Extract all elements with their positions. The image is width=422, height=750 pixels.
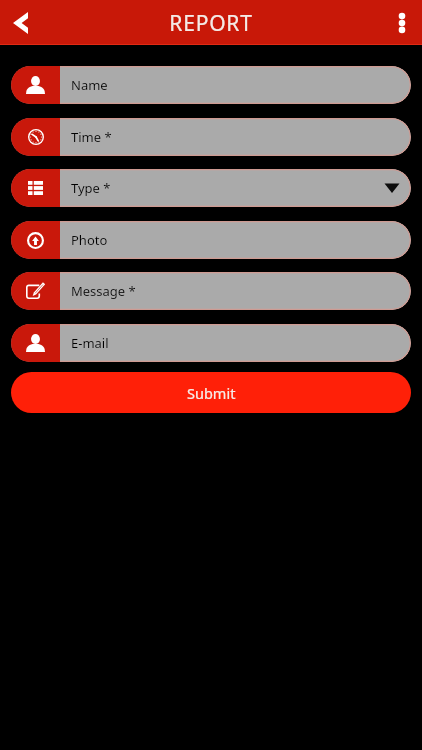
button[interactable]: More options [382,0,422,45]
staticText: Name [71,76,411,94]
button[interactable]: Time * [11,118,411,156]
button[interactable]: E-mail [11,324,411,362]
button[interactable]: Name [11,66,411,104]
staticText: Time * [71,128,411,146]
staticText: E-mail [71,334,411,352]
button[interactable]: Back [2,0,40,45]
staticText: Submit [187,383,236,403]
button[interactable]: Message * [11,272,411,310]
button[interactable]: Photo [11,221,411,259]
staticText: Type * [71,179,384,197]
button[interactable]: Submit [11,372,411,413]
staticText: Message * [71,282,411,300]
staticText: REPORT [169,9,253,38]
staticText: Photo [71,231,411,249]
button[interactable]: Type * [11,169,411,207]
